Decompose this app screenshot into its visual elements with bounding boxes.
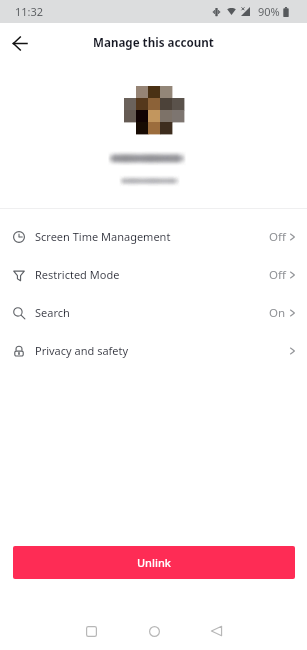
button[interactable]: Privacy and safety (0, 332, 307, 370)
staticText: Restricted Mode (35, 267, 120, 282)
staticText: Privacy and safety (35, 343, 129, 358)
staticText: Manage this account (93, 35, 214, 51)
button[interactable]: Unlink (13, 546, 295, 579)
button[interactable]: Search (0, 294, 307, 332)
staticText: Off (269, 229, 286, 245)
button[interactable]: Back (1, 24, 39, 62)
staticText: On (269, 305, 286, 321)
staticText: Unlink (137, 555, 172, 570)
staticText: Screen Time Management (35, 229, 171, 244)
staticText: 11:32 (15, 4, 44, 19)
staticText: Search (35, 305, 70, 320)
button[interactable]: Home (136, 616, 172, 646)
button[interactable]: Screen Time Management (0, 218, 307, 256)
staticText: Off (269, 267, 286, 283)
button[interactable]: Restricted Mode (0, 256, 307, 294)
button[interactable]: Recent apps (73, 616, 109, 646)
staticText: 90% (258, 4, 280, 19)
button[interactable]: Back (198, 616, 234, 646)
